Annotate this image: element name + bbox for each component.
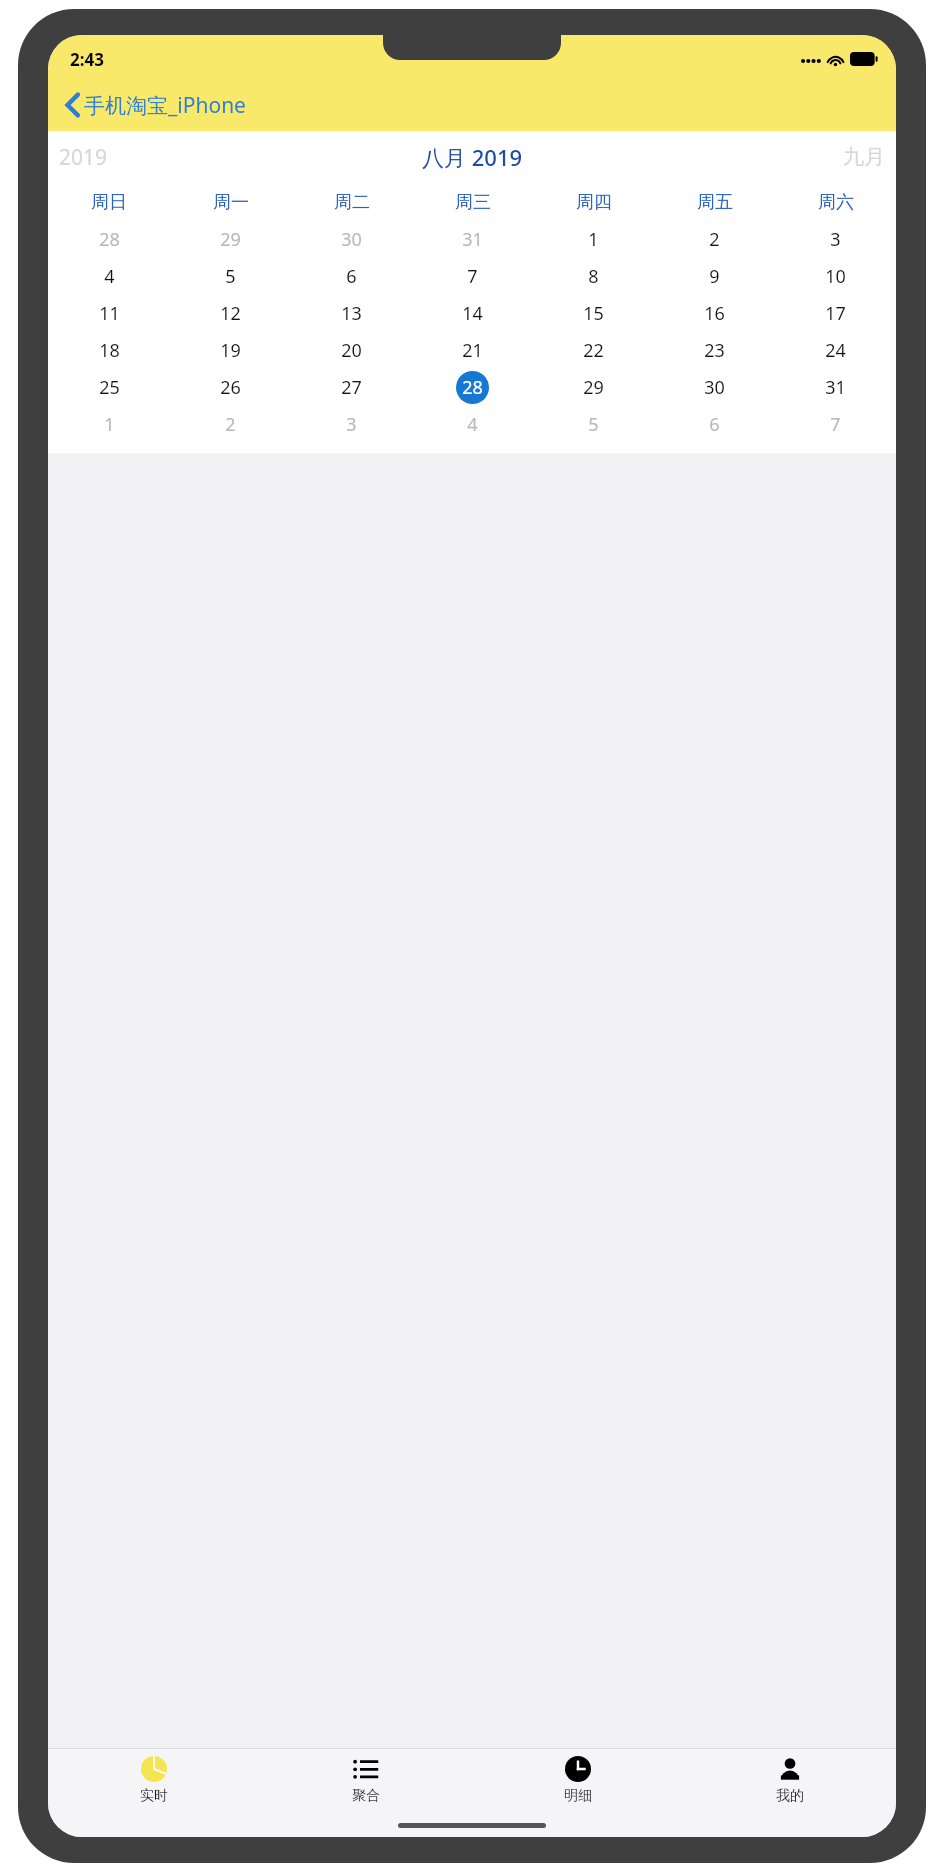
button[interactable]: 我的 Profile — [684, 1749, 896, 1811]
button[interactable]: 26 — [170, 369, 291, 406]
staticText: 我的 — [776, 1787, 804, 1805]
staticText: 16 — [704, 301, 725, 326]
staticText: 4 — [467, 412, 478, 437]
button[interactable]: 3 — [775, 221, 896, 258]
button[interactable]: 9 — [654, 258, 775, 295]
staticText: 5 — [588, 412, 599, 437]
staticText: 31 — [825, 375, 846, 400]
staticText: 31 — [462, 227, 483, 252]
button[interactable]: 29 — [170, 221, 291, 258]
staticText: 13 — [341, 301, 362, 326]
button[interactable]: 29 — [533, 369, 654, 406]
staticText: 27 — [341, 375, 362, 400]
button[interactable]: 聚合 Aggregate — [260, 1749, 472, 1811]
button[interactable]: 7 — [775, 406, 896, 443]
staticText: 3 — [346, 412, 357, 437]
staticText: 8 — [588, 264, 599, 289]
button[interactable]: 2 — [654, 221, 775, 258]
button[interactable]: 19 — [170, 332, 291, 369]
button[interactable]: 15 — [533, 295, 654, 332]
staticText: 7 — [830, 412, 841, 437]
staticText: 30 — [704, 375, 725, 400]
staticText: 1 — [588, 227, 599, 252]
button[interactable]: 16 — [654, 295, 775, 332]
staticText: 26 — [220, 375, 241, 400]
staticText: 29 — [583, 375, 604, 400]
button[interactable]: 31 — [775, 369, 896, 406]
button[interactable]: 14 — [412, 295, 533, 332]
staticText: 22 — [583, 338, 604, 363]
button[interactable]: 6 — [291, 258, 412, 295]
staticText: 明细 — [564, 1787, 592, 1805]
staticText: 2 — [225, 412, 236, 437]
button[interactable]: 27 — [291, 369, 412, 406]
button[interactable]: 7 — [412, 258, 533, 295]
button[interactable]: 4 — [48, 258, 170, 295]
staticText: 25 — [99, 375, 120, 400]
staticText: 12 — [220, 301, 241, 326]
button[interactable]: 4 — [412, 406, 533, 443]
staticText: 30 — [341, 227, 362, 252]
staticText: 3 — [830, 227, 841, 252]
staticText: 6 — [709, 412, 720, 437]
staticText: 14 — [462, 301, 483, 326]
button[interactable]: 28 — [48, 221, 170, 258]
button[interactable]: 2 — [170, 406, 291, 443]
button[interactable]: 2019 — [59, 143, 108, 172]
button[interactable]: 手机淘宝_iPhone — [48, 79, 896, 131]
button[interactable]: 8 — [533, 258, 654, 295]
button[interactable]: 5 — [170, 258, 291, 295]
staticText: 5 — [225, 264, 236, 289]
staticText: 18 — [99, 338, 120, 363]
button[interactable]: 11 — [48, 295, 170, 332]
staticText: 23 — [704, 338, 725, 363]
button[interactable]: 1 — [533, 221, 654, 258]
staticText: 21 — [462, 338, 483, 363]
staticText: 29 — [220, 227, 241, 252]
button[interactable]: 5 — [533, 406, 654, 443]
button[interactable]: 17 — [775, 295, 896, 332]
staticText: 周三 — [455, 191, 491, 214]
staticText: 9 — [709, 264, 720, 289]
button[interactable]: 23 — [654, 332, 775, 369]
button[interactable]: 20 — [291, 332, 412, 369]
staticText: 周五 — [697, 191, 733, 214]
staticText: 周二 — [334, 191, 370, 214]
staticText: 周四 — [576, 191, 612, 214]
button[interactable]: 明细 Details — [472, 1749, 684, 1811]
button[interactable]: 实时 Realtime — [48, 1749, 260, 1811]
staticText: 28 — [99, 227, 120, 252]
staticText: 28 — [462, 375, 483, 400]
button[interactable]: 13 — [291, 295, 412, 332]
button[interactable]: 30 — [654, 369, 775, 406]
button[interactable]: 25 — [48, 369, 170, 406]
staticText: 八月 2019 — [422, 142, 523, 172]
staticText: 24 — [825, 338, 846, 363]
button[interactable]: 3 — [291, 406, 412, 443]
button[interactable]: 九月 — [843, 144, 885, 170]
staticText: 15 — [583, 301, 604, 326]
staticText: 19 — [220, 338, 241, 363]
button[interactable]: 12 — [170, 295, 291, 332]
button[interactable]: 28 — [412, 369, 533, 406]
button[interactable]: 21 — [412, 332, 533, 369]
staticText: 10 — [825, 264, 846, 289]
button[interactable]: 10 — [775, 258, 896, 295]
button[interactable]: 18 — [48, 332, 170, 369]
button[interactable]: 22 — [533, 332, 654, 369]
staticText: 7 — [467, 264, 478, 289]
staticText: 11 — [99, 301, 120, 326]
staticText: 2 — [709, 227, 720, 252]
staticText: 聚合 — [352, 1787, 380, 1805]
button[interactable]: 6 — [654, 406, 775, 443]
button[interactable]: 31 — [412, 221, 533, 258]
staticText: 20 — [341, 338, 362, 363]
staticText: 17 — [825, 301, 846, 326]
staticText: 周六 — [818, 191, 854, 214]
button[interactable]: 30 — [291, 221, 412, 258]
staticText: 周日 — [91, 191, 127, 214]
staticText: 实时 — [140, 1787, 168, 1805]
button[interactable]: 1 — [48, 406, 170, 443]
button[interactable]: 24 — [775, 332, 896, 369]
staticText: 1 — [104, 412, 115, 437]
